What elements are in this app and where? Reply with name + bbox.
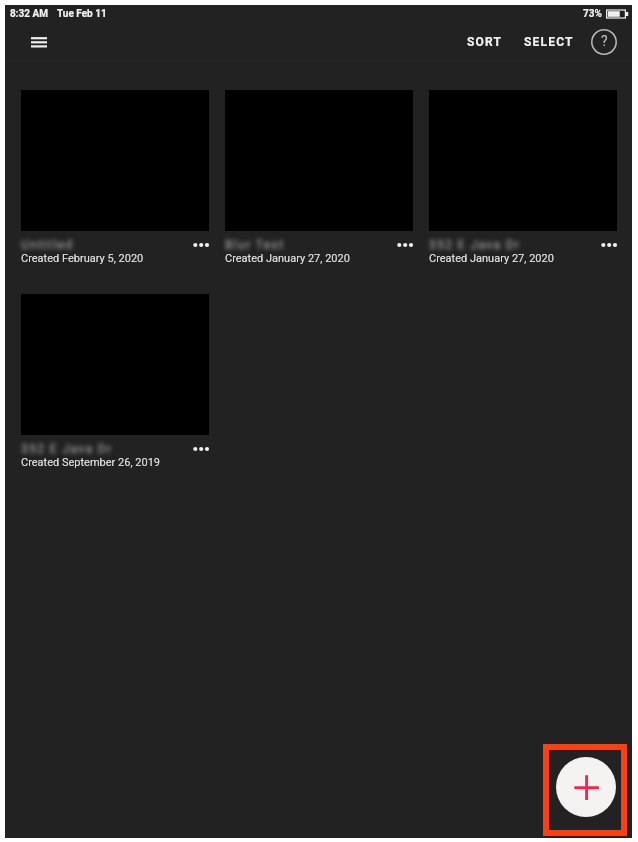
button[interactable]: More options <box>189 238 209 252</box>
other: Battery 73 percent <box>606 9 628 19</box>
button[interactable]: Blur Test <box>225 90 413 265</box>
button[interactable]: SELECT <box>518 26 580 58</box>
button[interactable]: SORT <box>461 26 509 58</box>
staticText: Blur Test <box>225 238 285 252</box>
button[interactable]: Help <box>588 26 620 58</box>
button[interactable]: 352 E Java Dr <box>21 294 209 469</box>
staticText: 352 E Java Dr <box>429 238 521 252</box>
staticText: 352 E Java Dr <box>21 442 113 456</box>
staticText: 8:32 AM <box>10 8 48 20</box>
button[interactable]: More options <box>189 442 209 456</box>
button[interactable]: More options <box>393 238 413 252</box>
staticText: Untitled <box>21 238 74 252</box>
button[interactable]: 352 E Java Dr <box>429 90 617 265</box>
staticText: Created January 27, 2020 <box>429 252 554 265</box>
staticText: Created January 27, 2020 <box>225 252 350 265</box>
button[interactable]: Open navigation menu <box>21 24 57 60</box>
staticText: Tue Feb 11 <box>57 8 107 20</box>
staticText: ? <box>601 33 608 49</box>
button[interactable]: New scan <box>556 757 616 817</box>
staticText: 73% <box>583 8 602 20</box>
button[interactable]: More options <box>597 238 617 252</box>
staticText: SORT <box>467 35 503 49</box>
staticText: Created February 5, 2020 <box>21 252 144 265</box>
staticText: Created September 26, 2019 <box>21 456 161 469</box>
staticText: SELECT <box>524 35 574 49</box>
button[interactable]: Untitled <box>21 90 209 265</box>
